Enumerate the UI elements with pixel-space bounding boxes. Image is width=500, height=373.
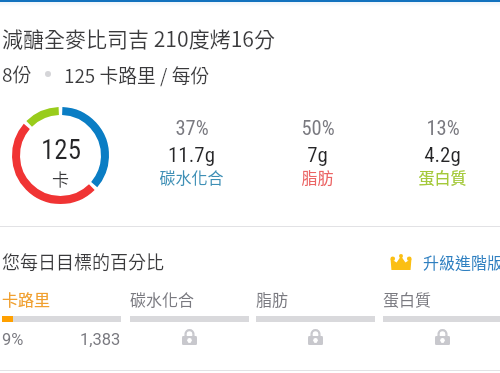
staticText: 卡路里 [2,287,51,310]
other: Locked [308,329,323,345]
button[interactable]: 37% [131,116,252,191]
button[interactable]: 脂肪 [256,287,375,346]
button[interactable]: 13% [382,116,500,191]
staticText: 11.7g [168,143,215,168]
button[interactable]: 卡路里 [2,287,121,349]
staticText: 4.2g [424,143,461,168]
staticText: 50% [301,116,335,140]
button[interactable]: 50% [257,116,378,191]
staticText: 13% [426,116,460,140]
button[interactable]: 碳水化合 [130,287,249,346]
other: Upgrade to premium [390,254,412,270]
staticText: 卡 [52,166,69,191]
staticText: 碳水化合 [130,287,195,310]
staticText: 升級進階版 [423,250,500,273]
staticText: 125 卡路里 / 每份 [64,61,210,88]
staticText: 您每日目標的百分比 [2,248,164,274]
staticText: 8份 [2,60,32,88]
staticText: 125 [41,134,81,166]
other: Locked [435,329,450,345]
staticText: 37% [175,116,209,140]
staticText: 蛋白質 [383,287,432,310]
staticText: 脂肪 [301,165,334,188]
button[interactable]: 蛋白質 [383,287,500,346]
button[interactable]: Upgrade to premium [390,250,500,273]
other: Locked [182,329,197,345]
staticText: 9% [2,330,24,349]
button[interactable]: Calorie breakdown [8,103,113,208]
staticText: 蛋白質 [418,165,467,188]
staticText: 脂肪 [256,287,289,310]
staticText: 減醣全麥比司吉 210度烤16分 [2,23,275,53]
staticText: 7g [307,143,328,168]
staticText: 1,383 [80,330,121,349]
staticText: 碳水化合 [159,165,224,188]
